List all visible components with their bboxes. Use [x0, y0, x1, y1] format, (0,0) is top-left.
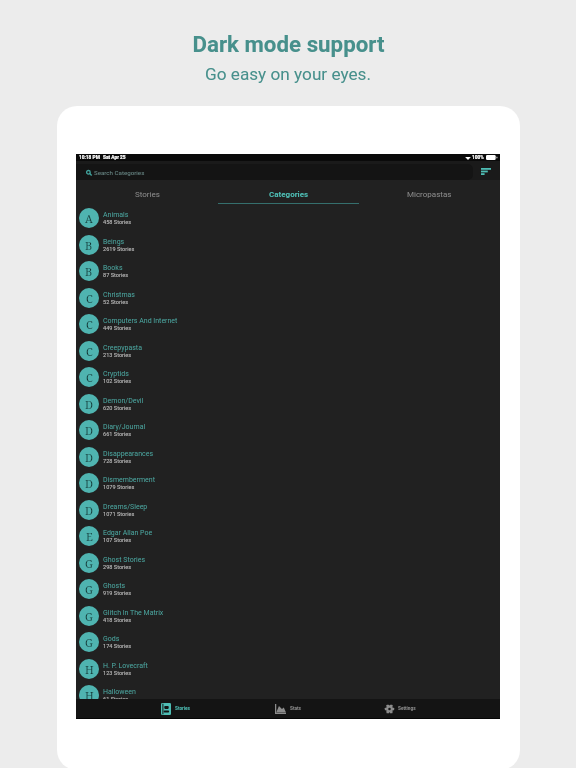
- staticText: D: [85, 450, 93, 465]
- staticText: G: [85, 635, 93, 650]
- staticText: Dismemberment: [103, 476, 155, 484]
- staticText: 102 Stories: [103, 378, 132, 385]
- staticText: Disappearances: [103, 450, 153, 458]
- button[interactable]: G: [76, 575, 500, 602]
- staticText: G: [85, 582, 93, 597]
- button[interactable]: G: [76, 549, 500, 576]
- staticText: 1079 Stories: [103, 484, 135, 491]
- staticText: C: [86, 291, 93, 306]
- button[interactable]: Search Categories: [76, 164, 473, 180]
- staticText: Ghost Stories: [103, 556, 146, 564]
- staticText: G: [85, 609, 93, 624]
- staticText: Dreams/Sleep: [103, 503, 148, 511]
- staticText: 10:18 PM: [79, 155, 100, 161]
- button[interactable]: H: [76, 681, 500, 699]
- staticText: Ghosts: [103, 582, 126, 590]
- staticText: C: [86, 370, 93, 385]
- staticText: Books: [103, 264, 123, 272]
- button[interactable]: C: [76, 337, 500, 364]
- staticText: 123 Stories: [103, 670, 132, 677]
- staticText: 213 Stories: [103, 352, 132, 359]
- staticText: C: [86, 317, 93, 332]
- staticText: D: [85, 503, 93, 518]
- staticText: C: [86, 344, 93, 359]
- staticText: Edgar Allan Poe: [103, 529, 153, 537]
- button[interactable]: B: [76, 257, 500, 284]
- staticText: 458 Stories: [103, 219, 132, 226]
- staticText: Cryptids: [103, 370, 129, 378]
- button[interactable]: Settings: [344, 699, 457, 718]
- staticText: Stories: [135, 190, 160, 199]
- button[interactable]: Stories: [119, 699, 231, 718]
- staticText: Demon/Devil: [103, 397, 144, 405]
- staticText: 298 Stories: [103, 564, 132, 571]
- staticText: Go easy on your eyes.: [205, 64, 371, 84]
- button[interactable]: D: [76, 496, 500, 523]
- button[interactable]: A: [76, 204, 500, 231]
- button[interactable]: E: [76, 522, 500, 549]
- staticText: B: [85, 238, 93, 253]
- staticText: Micropastas: [407, 190, 452, 199]
- staticText: Stories: [175, 706, 190, 712]
- button[interactable]: H: [76, 655, 500, 682]
- staticText: 87 Stories: [103, 272, 129, 279]
- staticText: 919 Stories: [103, 590, 132, 597]
- staticText: 100%: [472, 155, 484, 161]
- staticText: H: [85, 688, 94, 699]
- staticText: 1071 Stories: [103, 511, 135, 518]
- button[interactable]: D: [76, 416, 500, 443]
- staticText: 174 Stories: [103, 643, 132, 650]
- staticText: 661 Stories: [103, 431, 132, 438]
- button[interactable]: B: [76, 231, 500, 258]
- staticText: Computers And Internet: [103, 317, 178, 325]
- staticText: Halloween: [103, 688, 136, 696]
- staticText: E: [86, 529, 93, 544]
- button[interactable]: Stats: [231, 699, 344, 718]
- staticText: 2619 Stories: [103, 246, 135, 253]
- button[interactable]: Categories: [218, 180, 359, 204]
- button[interactable]: Micropastas: [359, 180, 500, 204]
- staticText: 52 Stories: [103, 299, 129, 306]
- button[interactable]: Sort: [480, 165, 492, 177]
- button[interactable]: C: [76, 310, 500, 337]
- staticText: Creepypasta: [103, 344, 142, 352]
- staticText: 418 Stories: [103, 617, 132, 624]
- staticText: D: [85, 476, 93, 491]
- staticText: G: [85, 556, 93, 571]
- staticText: D: [85, 423, 93, 438]
- staticText: 728 Stories: [103, 458, 132, 465]
- button[interactable]: C: [76, 363, 500, 390]
- staticText: Categories: [269, 190, 309, 199]
- staticText: Dark mode support: [192, 31, 385, 57]
- staticText: H: [85, 662, 94, 677]
- staticText: 449 Stories: [103, 325, 132, 332]
- staticText: Diary/Journal: [103, 423, 146, 431]
- staticText: A: [85, 211, 93, 226]
- staticText: B: [85, 264, 93, 279]
- staticText: 61 Stories: [103, 696, 129, 699]
- button[interactable]: D: [76, 443, 500, 470]
- staticText: Christmas: [103, 291, 135, 299]
- staticText: Gods: [103, 635, 120, 643]
- button[interactable]: D: [76, 390, 500, 417]
- button[interactable]: D: [76, 469, 500, 496]
- staticText: Beings: [103, 238, 125, 246]
- button[interactable]: C: [76, 284, 500, 311]
- staticText: Search Categories: [94, 169, 145, 176]
- button[interactable]: G: [76, 628, 500, 655]
- staticText: H. P. Lovecraft: [103, 662, 148, 670]
- staticText: Animals: [103, 211, 129, 219]
- staticText: Settings: [398, 706, 416, 712]
- button[interactable]: G: [76, 602, 500, 629]
- staticText: Sat Apr 25: [103, 155, 126, 161]
- button[interactable]: Stories: [76, 180, 218, 204]
- staticText: Stats: [290, 706, 301, 712]
- staticText: D: [85, 397, 93, 412]
- staticText: 107 Stories: [103, 537, 132, 544]
- staticText: 620 Stories: [103, 405, 132, 412]
- staticText: Glitch In The Matrix: [103, 609, 164, 617]
